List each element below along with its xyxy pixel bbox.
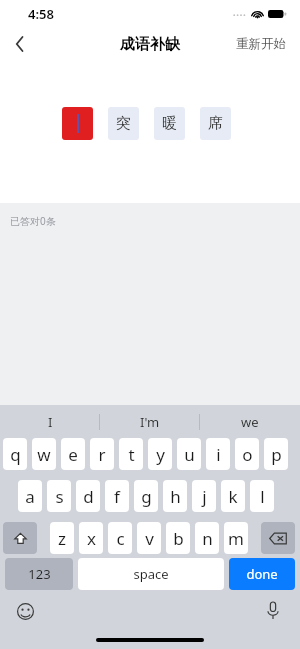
button[interactable]: w [32,438,56,470]
staticText: k [228,485,238,508]
button[interactable]: 重新开始 [230,30,292,58]
button[interactable]: v [137,522,161,554]
button[interactable]: 暖 [154,107,185,140]
button[interactable]: Input slot [62,107,93,140]
button[interactable]: Emoji [14,600,36,622]
staticText: q [10,443,21,466]
staticText: r [98,443,106,466]
button[interactable]: I [0,405,100,438]
button[interactable]: l [250,480,274,512]
staticText: b [173,527,184,550]
button[interactable]: Shift [3,522,37,554]
staticText: n [202,527,213,550]
button[interactable]: o [235,438,259,470]
staticText: z [58,527,66,550]
staticText: 席 [208,114,223,133]
button[interactable]: s [47,480,71,512]
button[interactable]: d [76,480,100,512]
staticText: p [271,443,282,466]
staticText: 突 [116,114,131,133]
button[interactable]: j [192,480,216,512]
button[interactable]: p [264,438,288,470]
staticText: o [242,443,253,466]
button[interactable]: q [3,438,27,470]
staticText: x [87,527,96,550]
button[interactable]: a [18,480,42,512]
button[interactable]: f [105,480,129,512]
staticText: s [55,485,64,508]
staticText: 已答对0条 [10,214,56,228]
button[interactable]: done [229,558,295,590]
staticText: y [156,443,165,466]
staticText: v [145,527,154,550]
button[interactable]: t [119,438,143,470]
staticText: 4:58 [28,5,54,23]
button[interactable]: space [78,558,224,590]
button[interactable]: I'm [100,405,200,438]
button[interactable]: Dictation [262,599,284,621]
button[interactable]: g [134,480,158,512]
staticText: I'm [140,413,160,431]
button[interactable]: i [206,438,230,470]
button[interactable]: 席 [200,107,231,140]
staticText: 暖 [162,114,177,133]
staticText: m [228,527,244,550]
button[interactable]: k [221,480,245,512]
button[interactable]: z [50,522,74,554]
staticText: 重新开始 [236,36,286,52]
button[interactable]: c [108,522,132,554]
staticText: t [128,443,135,466]
button[interactable]: r [90,438,114,470]
staticText: I [48,413,53,431]
button[interactable]: y [148,438,172,470]
staticText: u [184,443,195,466]
staticText: h [170,485,181,508]
staticText: 123 [28,565,51,583]
staticText: d [83,485,94,508]
button[interactable]: 突 [108,107,139,140]
staticText: l [260,485,265,508]
staticText: w [37,443,51,466]
button[interactable]: n [195,522,219,554]
button[interactable]: 123 [5,558,73,590]
staticText: c [116,527,125,550]
button[interactable]: Backspace [261,522,295,554]
staticText: g [141,485,152,508]
staticText: f [114,485,120,508]
button[interactable]: x [79,522,103,554]
button[interactable]: u [177,438,201,470]
staticText: we [241,413,259,431]
button[interactable]: e [61,438,85,470]
button[interactable]: h [163,480,187,512]
staticText: j [202,485,207,508]
button[interactable]: b [166,522,190,554]
staticText: space [133,565,169,583]
staticText: 成语补缺 [120,35,180,54]
button[interactable]: m [224,522,248,554]
button[interactable]: we [200,405,300,438]
staticText: done [246,565,278,583]
staticText: e [68,443,78,466]
staticText: i [216,443,221,466]
staticText: a [25,485,35,508]
button[interactable]: Back [0,28,40,60]
